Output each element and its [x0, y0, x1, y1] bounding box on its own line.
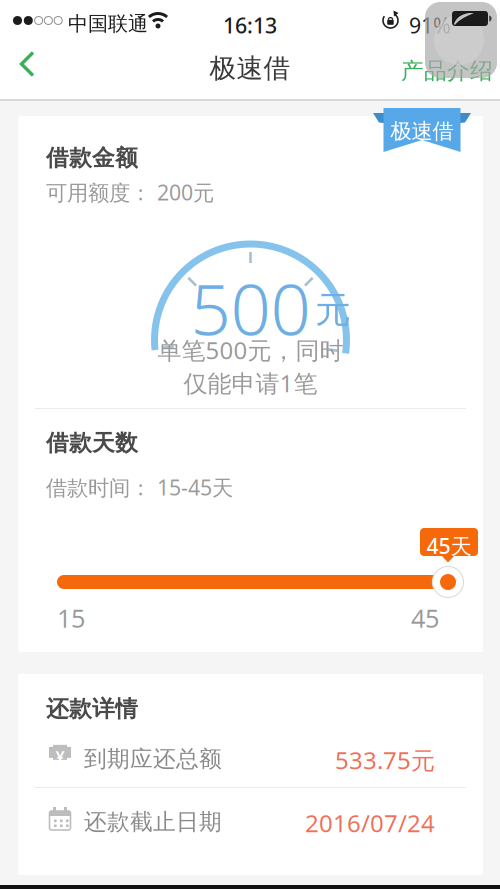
staticText: 元 [315, 288, 351, 332]
staticText: 还款截止日期 [84, 808, 222, 836]
staticText: 极速借 [390, 118, 453, 144]
staticText: 533.75元 [335, 744, 435, 776]
staticText: 仅能申请1笔 [183, 367, 317, 399]
staticText: 16:13 [223, 11, 277, 39]
staticText: 15 [57, 601, 85, 635]
staticText: 产品介绍 [401, 57, 493, 85]
button[interactable]: 产品介绍 [401, 57, 493, 85]
staticText: 单笔500元，同时 [157, 334, 343, 366]
button[interactable]: 借款天数滑块 [57, 528, 456, 598]
staticText: 借款天数 [46, 429, 138, 457]
staticText: 还款详情 [46, 695, 138, 723]
staticText: 500 [190, 261, 310, 355]
button[interactable]: ¥ [18, 739, 483, 772]
staticText: 借款金额 [46, 144, 138, 172]
staticText: 中国联通 [68, 11, 148, 36]
staticText: 45天 [426, 531, 471, 560]
staticText: ¥ [55, 746, 64, 768]
staticText: 2016/07/24 [305, 807, 435, 839]
staticText: 到期应还总额 [84, 745, 222, 773]
button[interactable]: Back [16, 42, 46, 86]
staticText: 借款时间： 15-45天 [46, 473, 233, 501]
staticText: 极速借 [209, 52, 290, 85]
button[interactable]: 还款截止日期 [18, 802, 483, 835]
staticText: 45 [411, 601, 439, 635]
staticText: 可用额度： 200元 [46, 178, 214, 206]
staticText: 91% [409, 11, 451, 39]
